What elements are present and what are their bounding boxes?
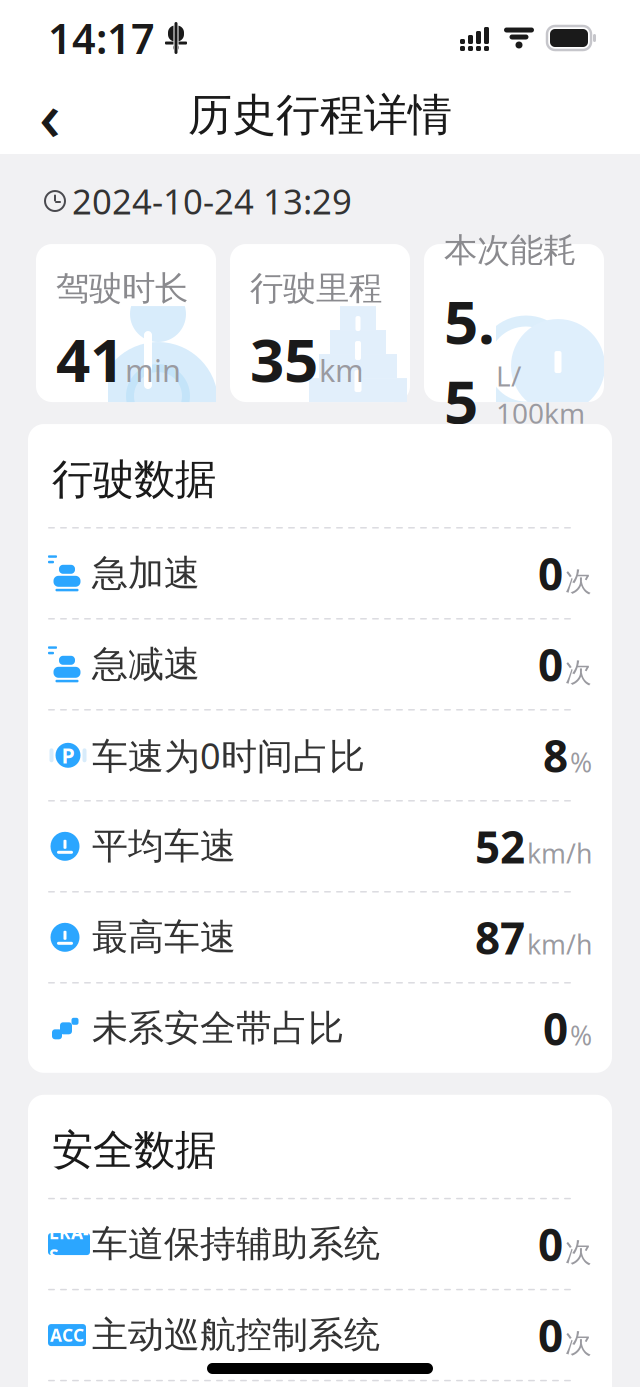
staticText: km [319,350,364,390]
button[interactable]: ACC [28,1291,612,1380]
staticText: 行驶数据 [52,454,216,505]
staticText: km/h [527,926,592,962]
staticText: 次 [565,656,592,689]
staticText: ACC [50,1324,84,1347]
staticText: 车道保持辅助系统 [92,1222,380,1266]
staticText: 0 [538,635,563,693]
staticText: km/h [527,835,592,871]
staticText: 52 [475,817,525,875]
staticText: P [61,741,74,769]
staticText: 0 [538,1215,563,1273]
button[interactable]: 急减速 [28,620,612,709]
staticText: 41 [56,319,124,399]
staticText: LKAS [49,1221,89,1267]
staticText: 5.5 [444,281,495,440]
staticText: 急减速 [92,642,200,686]
staticText: 主动巡航控制系统 [92,1313,380,1357]
staticText: L/100km [496,357,585,431]
staticText: 次 [565,1327,592,1360]
staticText: 0 [538,544,563,602]
button[interactable]: 未系安全带占比 [28,984,612,1073]
staticText: 行驶里程 [250,268,382,309]
staticText: 急加速 [92,551,200,595]
staticText: 次 [565,565,592,598]
button[interactable]: LKAS [28,1200,612,1289]
staticText: 车速为0时间占比 [92,731,365,779]
staticText: 0 [543,999,568,1057]
staticText: 平均车速 [92,824,236,868]
staticText: 0 [538,1306,563,1364]
staticText: % [570,1017,592,1053]
button[interactable]: 急加速 [28,529,612,618]
staticText: % [570,744,592,780]
staticText: 本次能耗 [444,230,576,271]
staticText: 历史行程详情 [188,88,452,142]
staticText: 最高车速 [92,915,236,959]
staticText: 次 [565,1236,592,1269]
staticText: 8 [543,726,568,784]
staticText: 2024-10-24 13:29 [72,178,352,224]
staticText: min [125,350,181,390]
button[interactable]: 平均车速 [28,802,612,891]
button[interactable]: P [28,711,612,800]
staticText: ‹ [39,71,61,159]
staticText: 35 [250,319,318,399]
staticText: 14:17 [48,11,155,65]
button[interactable]: 返回 [22,87,78,143]
staticText: 安全数据 [52,1125,216,1176]
staticText: 87 [475,908,525,966]
staticText: 未系安全带占比 [92,1006,344,1050]
staticText: 驾驶时长 [56,268,188,309]
button[interactable]: 最高车速 [28,893,612,982]
